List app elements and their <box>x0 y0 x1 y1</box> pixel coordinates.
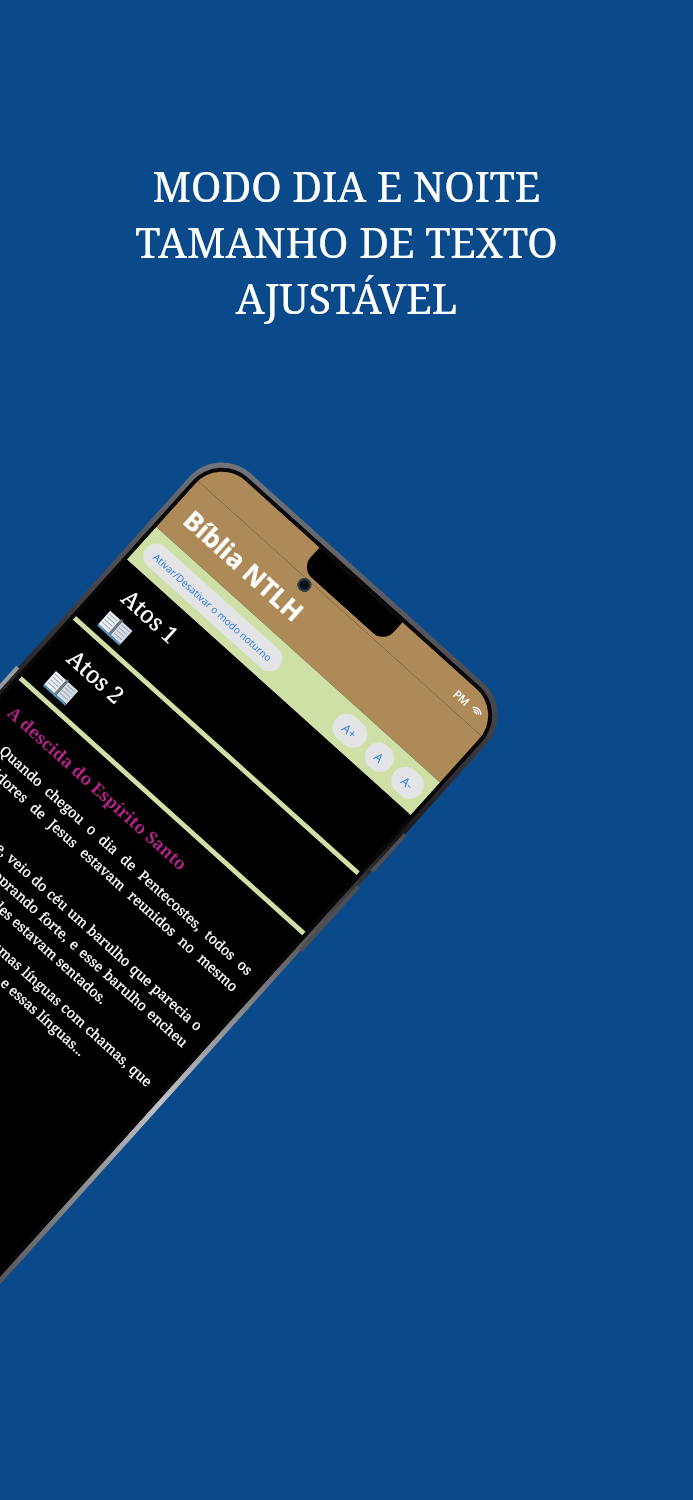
staticText: PM <box>451 686 473 709</box>
staticText: Atos 2 <box>61 642 132 710</box>
button[interactable]: Atos 2 <box>22 620 356 932</box>
staticText: Atos 1 <box>116 582 186 650</box>
button[interactable]: A <box>359 737 400 778</box>
staticText: A- <box>398 773 417 793</box>
button[interactable]: Ativar/Desativar o modo noturno <box>138 538 288 677</box>
staticText: TAMANHO DE TEXTO <box>0 214 693 270</box>
staticText: 3. Então todos viram umas línguas com ch… <box>0 839 157 1107</box>
staticText: MODO DIA E NOITE <box>0 158 693 214</box>
staticText: AJUSTÁVEL <box>0 270 693 326</box>
staticText: Ativar/Desativar o modo noturno <box>150 550 275 665</box>
button[interactable]: A+ <box>327 708 373 754</box>
staticText: 1. Quando chegou o dia de Pentecostes, t… <box>0 728 257 1012</box>
button[interactable]: Atos 1 <box>76 559 411 872</box>
staticText: 2. De repente, veio do céu um barulho qu… <box>0 784 207 1067</box>
button[interactable]: A- <box>386 761 430 804</box>
other: Abrir capítulo <box>43 670 79 706</box>
button[interactable]: Bíblia NTLH <box>156 481 482 782</box>
staticText: Bíblia NTLH <box>177 502 312 628</box>
staticText: A descida do Espírito Santo <box>3 701 193 875</box>
staticText: A+ <box>339 720 361 742</box>
staticText: A <box>371 749 388 766</box>
other: Abrir capítulo <box>97 610 133 646</box>
